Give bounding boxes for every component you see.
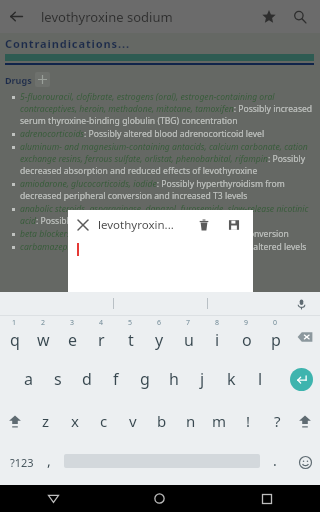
button[interactable]: l xyxy=(246,358,275,400)
staticText: levothyroxin... xyxy=(98,217,191,233)
staticText: t xyxy=(128,329,134,351)
staticText: ?123 xyxy=(10,455,34,470)
staticText: y xyxy=(155,329,164,351)
staticText: ! xyxy=(246,411,251,431)
staticText: c xyxy=(100,411,108,431)
staticText: i xyxy=(215,329,220,351)
button[interactable]: f xyxy=(101,358,130,400)
button[interactable]: Voice input xyxy=(290,293,312,315)
staticText: s xyxy=(54,368,62,390)
button[interactable]: v xyxy=(118,400,147,442)
button[interactable]: n xyxy=(176,400,205,442)
staticText: amiodarone, glucocorticoids, iodide: Pos… xyxy=(20,178,314,202)
staticText: l xyxy=(258,368,263,390)
button[interactable]: 4 xyxy=(87,316,116,358)
button[interactable]: 9 xyxy=(232,316,261,358)
staticText: 5 xyxy=(128,318,133,328)
button[interactable] xyxy=(68,240,253,300)
button[interactable]: h xyxy=(159,358,188,400)
staticText: x xyxy=(71,411,79,431)
staticText: o xyxy=(242,329,252,351)
button[interactable]: k xyxy=(217,358,246,400)
staticText: p xyxy=(271,329,281,351)
staticText: n xyxy=(186,411,196,431)
staticText: e xyxy=(68,329,78,351)
button[interactable]: Emoji xyxy=(290,442,320,482)
button[interactable]: ? xyxy=(263,400,292,442)
button[interactable]: 6 xyxy=(145,316,174,358)
staticText: w xyxy=(37,329,50,351)
staticText: carbamazepine, phenytoin, salicylates (I… xyxy=(20,241,307,253)
button[interactable]: Favorite xyxy=(254,2,284,32)
staticText: Drugs xyxy=(5,74,32,86)
button[interactable]: Shift xyxy=(290,400,320,442)
button[interactable]: Close xyxy=(68,210,98,240)
staticText: Contraindications... xyxy=(5,36,130,51)
button[interactable]: Shift xyxy=(0,400,30,442)
staticText: g xyxy=(140,368,150,390)
button[interactable]: Enter xyxy=(283,358,320,400)
button[interactable]: ?123 xyxy=(0,442,44,482)
staticText: aluminum- and magnesium-containing antac… xyxy=(20,141,314,177)
button[interactable]: z xyxy=(31,400,60,442)
staticText: 4 xyxy=(99,318,104,328)
staticText: 2 xyxy=(41,318,46,328)
staticText: adrenocorticoids: Possibly altered blood… xyxy=(20,128,265,140)
button[interactable]: Delete xyxy=(191,212,217,238)
staticText: m xyxy=(212,411,227,431)
button[interactable]: 0 xyxy=(261,316,290,358)
button[interactable]: ! xyxy=(234,400,263,442)
staticText: , xyxy=(47,451,51,470)
staticText: levothyroxine sodium xyxy=(41,8,173,26)
button[interactable]: , xyxy=(34,442,64,482)
staticText: 7 xyxy=(186,318,191,328)
staticText: ? xyxy=(274,411,281,431)
button[interactable]: Backspace xyxy=(290,316,320,358)
button[interactable]: Home xyxy=(106,485,213,512)
staticText: 5-fluorouracil, clofibrate, estrogens (o… xyxy=(20,91,314,127)
staticText: j xyxy=(200,368,205,390)
staticText: 1 xyxy=(12,318,17,328)
staticText: anabolic steroids, asparaginase, danazol… xyxy=(20,203,314,227)
staticText: a xyxy=(24,368,33,390)
staticText: b xyxy=(157,411,167,431)
button[interactable]: Save xyxy=(221,212,247,238)
staticText: 8 xyxy=(215,318,220,328)
button[interactable]: Back xyxy=(0,485,106,512)
button[interactable]: g xyxy=(130,358,159,400)
staticText: z xyxy=(42,411,50,431)
staticText: 6 xyxy=(157,318,162,328)
button[interactable]: Expand xyxy=(35,72,50,87)
staticText: 0 xyxy=(273,318,278,328)
staticText: d xyxy=(82,368,92,390)
button[interactable]: Back xyxy=(0,0,33,33)
staticText: k xyxy=(227,368,236,390)
button[interactable]: b xyxy=(147,400,176,442)
staticText: 3 xyxy=(70,318,75,328)
button[interactable]: j xyxy=(188,358,217,400)
button[interactable]: 1 xyxy=(0,316,29,358)
button[interactable]: Recent apps xyxy=(213,485,320,512)
staticText: u xyxy=(184,329,194,351)
staticText: v xyxy=(129,411,137,431)
button[interactable]: . xyxy=(262,442,288,482)
button[interactable]: s xyxy=(43,358,72,400)
button[interactable]: 3 xyxy=(58,316,87,358)
button[interactable]: Search xyxy=(284,1,316,33)
button[interactable]: 7 xyxy=(174,316,203,358)
staticText: r xyxy=(98,329,105,351)
button[interactable]: 8 xyxy=(203,316,232,358)
staticText: f xyxy=(113,368,119,390)
staticText: 9 xyxy=(244,318,249,328)
button[interactable]: d xyxy=(72,358,101,400)
staticText: beta blockers: Possibly decreased effect… xyxy=(20,228,289,240)
button[interactable]: x xyxy=(60,400,89,442)
button[interactable]: 2 xyxy=(29,316,58,358)
button[interactable]: c xyxy=(89,400,118,442)
button[interactable]: a xyxy=(14,358,43,400)
staticText: q xyxy=(10,329,20,351)
button[interactable]: 5 xyxy=(116,316,145,358)
button[interactable]: m xyxy=(205,400,234,442)
staticText: . xyxy=(273,451,277,470)
